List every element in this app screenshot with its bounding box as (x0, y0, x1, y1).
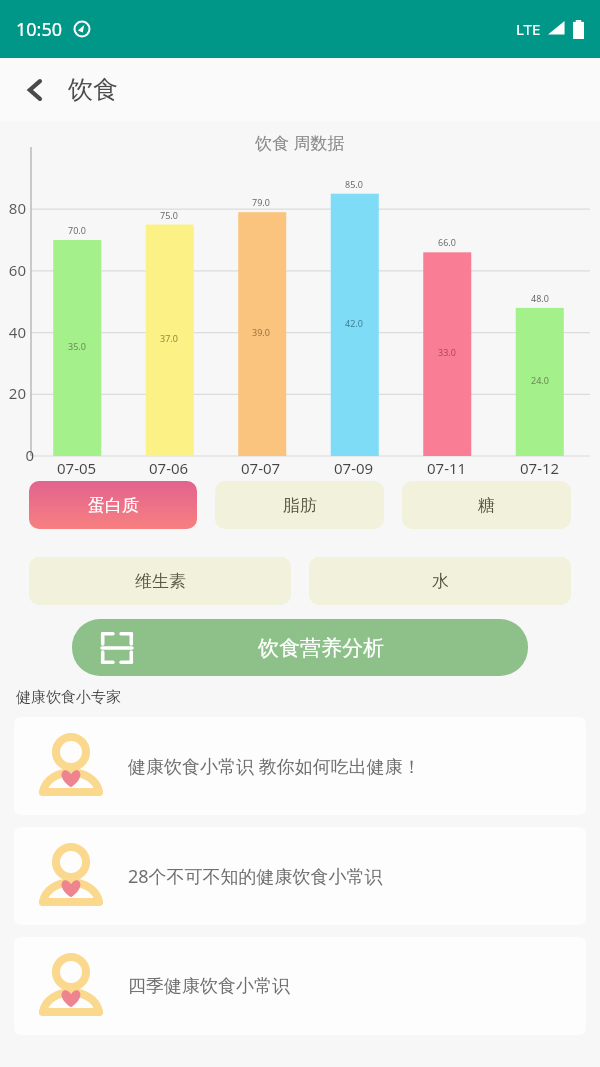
staticText: 80 (0, 198, 26, 218)
staticText: 79.0 (252, 196, 270, 208)
button[interactable]: 脂肪 (215, 481, 384, 529)
staticText: 42.0 (345, 317, 363, 329)
button[interactable]: 维生素 (29, 557, 291, 605)
button[interactable]: 四季健康饮食小常识 (14, 937, 586, 1035)
button[interactable]: 糖 (402, 481, 571, 529)
staticText: 健康饮食小常识 教你如何吃出健康！ (128, 754, 421, 779)
staticText: 10:50 (16, 17, 63, 42)
button[interactable]: 返回 (14, 68, 58, 112)
staticText: 24.0 (531, 374, 549, 386)
staticText: 33.0 (438, 346, 456, 358)
staticText: 20 (0, 383, 26, 403)
staticText: 85.0 (345, 178, 363, 190)
staticText: 35.0 (68, 340, 86, 352)
staticText: 48.0 (531, 292, 549, 304)
staticText: 四季健康饮食小常识 (128, 975, 290, 998)
staticText: 39.0 (252, 326, 270, 338)
staticText: 饮食 周数据 (255, 131, 345, 154)
staticText: 07-07 (241, 458, 281, 478)
staticText: 健康饮食小专家 (16, 688, 121, 707)
button[interactable]: 健康饮食小常识 教你如何吃出健康！ (14, 717, 586, 815)
staticText: 饮食营养分析 (258, 635, 384, 661)
staticText: 维生素 (135, 571, 186, 592)
staticText: 70.0 (68, 224, 86, 236)
staticText: 60 (0, 260, 26, 280)
staticText: 07-09 (334, 458, 374, 478)
staticText: 40 (0, 322, 26, 342)
staticText: 37.0 (160, 332, 178, 344)
staticText: 07-05 (57, 458, 97, 478)
staticText: 水 (432, 571, 449, 592)
staticText: 脂肪 (283, 495, 317, 516)
staticText: 07-06 (149, 458, 189, 478)
button[interactable]: 28个不可不知的健康饮食小常识 (14, 827, 586, 925)
staticText: 07-12 (520, 458, 560, 478)
button[interactable]: 蛋白质 (29, 481, 197, 529)
staticText: 饮食 (68, 74, 118, 105)
staticText: 蛋白质 (88, 495, 139, 516)
staticText: 糖 (478, 495, 495, 516)
staticText: 07-11 (427, 458, 467, 478)
button[interactable]: 饮食营养分析 (72, 619, 528, 676)
staticText: LTE (516, 19, 541, 39)
staticText: 75.0 (160, 209, 178, 221)
staticText: 28个不可不知的健康饮食小常识 (128, 864, 383, 889)
staticText: 66.0 (438, 236, 456, 248)
staticText: 0 (8, 445, 34, 465)
button[interactable]: 水 (309, 557, 571, 605)
